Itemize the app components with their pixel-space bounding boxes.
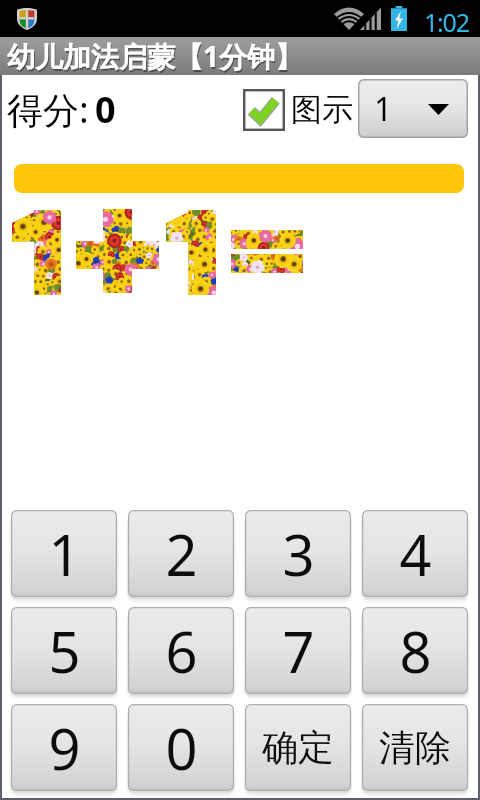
staticText: 清除	[379, 725, 451, 770]
staticText: 1	[48, 516, 81, 592]
staticText: 1:02	[424, 5, 469, 39]
button[interactable]: 4	[362, 510, 468, 597]
staticText: 幼儿加法启蒙【1分钟】	[7, 37, 304, 75]
staticText: 4	[399, 516, 432, 592]
button[interactable]: 图示	[243, 89, 285, 131]
button[interactable]: 6	[128, 607, 234, 694]
staticText: 得分:	[7, 85, 89, 134]
button[interactable]: 难度	[358, 79, 468, 138]
staticText: 0	[95, 85, 116, 134]
button[interactable]: 确定	[245, 704, 351, 791]
button[interactable]: 2	[128, 510, 234, 597]
other: 剩余时间	[14, 164, 464, 193]
button[interactable]: 3	[245, 510, 351, 597]
staticText: 1	[374, 87, 393, 131]
staticText: 确定	[262, 725, 334, 770]
staticText: 3	[282, 516, 315, 592]
button[interactable]: 1	[11, 510, 117, 597]
staticText: 图示	[291, 90, 353, 129]
staticText: 5	[48, 613, 81, 689]
button[interactable]: 7	[245, 607, 351, 694]
staticText: 0	[165, 710, 198, 786]
staticText: 6	[165, 613, 198, 689]
button[interactable]: 0	[128, 704, 234, 791]
button[interactable]: 8	[362, 607, 468, 694]
staticText: 幼儿加法启蒙【1分钟】	[8, 39, 305, 77]
button[interactable]: 5	[11, 607, 117, 694]
staticText: 7	[282, 613, 315, 689]
button[interactable]: 清除	[362, 704, 468, 791]
staticText: 8	[399, 613, 432, 689]
button[interactable]: 9	[11, 704, 117, 791]
staticText: 2	[165, 516, 198, 592]
staticText: 9	[48, 710, 81, 786]
